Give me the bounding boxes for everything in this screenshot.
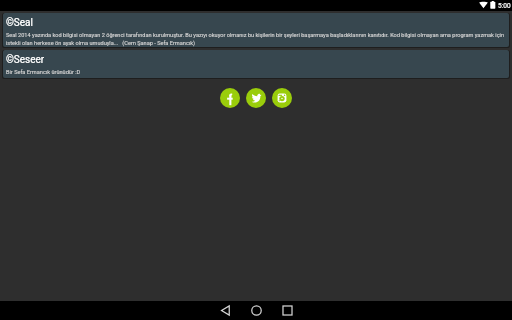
button[interactable]: Facebook xyxy=(220,88,240,108)
staticText: ©Seseer xyxy=(6,54,45,66)
staticText: 5:00 xyxy=(498,2,511,10)
button[interactable]: Back xyxy=(211,301,239,320)
button[interactable]: Twitter xyxy=(246,88,266,108)
button[interactable]: Recents xyxy=(273,301,301,320)
staticText: Seal 2014 yazında kod bilgisi olmayan 2 … xyxy=(6,32,506,46)
staticText: ©Seal xyxy=(6,17,33,29)
button[interactable]: ©Seseer xyxy=(3,50,509,78)
button[interactable]: Instagram xyxy=(272,88,292,108)
staticText: Bir Sefa Ermancık ürünüdür :D xyxy=(6,69,81,76)
button[interactable]: ©Seal xyxy=(3,13,509,47)
button[interactable]: Home xyxy=(242,301,270,320)
